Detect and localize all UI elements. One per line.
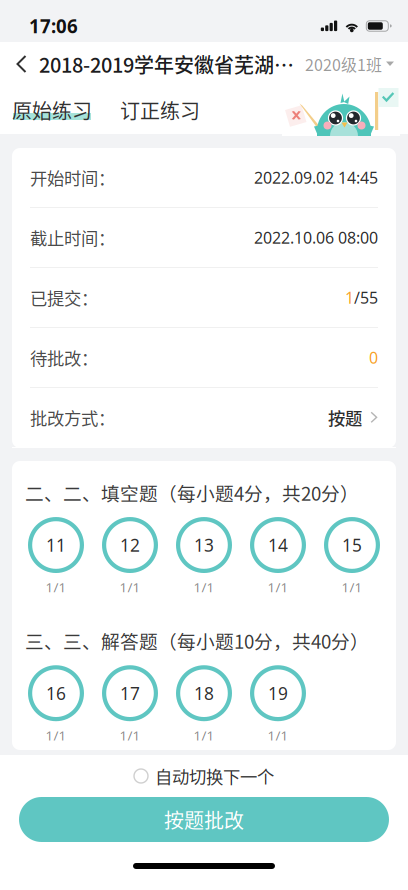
button[interactable]: 自动切换下一个 (134, 761, 274, 791)
button[interactable]: 按题批改 (19, 797, 389, 842)
staticText: 已提交： (30, 285, 98, 310)
button[interactable]: 11 (28, 517, 84, 596)
staticText: 开始时间： (30, 165, 115, 190)
staticText: /55 (354, 287, 378, 308)
button[interactable]: 16 (28, 665, 84, 744)
button[interactable]: 17 (102, 665, 158, 744)
button[interactable]: 13 (176, 517, 232, 596)
staticText: 2020级1班 (305, 52, 382, 76)
staticText: 1/1 (119, 726, 140, 744)
staticText: 19 (268, 681, 288, 705)
staticText: 13 (194, 533, 214, 557)
staticText: 1/1 (193, 726, 214, 744)
staticText: 2022.10.06 08:00 (254, 227, 378, 248)
staticText: 1/1 (45, 578, 66, 596)
button[interactable]: 批改方式： (12, 388, 396, 448)
button[interactable]: Back (6, 42, 37, 86)
staticText: 1/1 (267, 578, 288, 596)
button[interactable]: 19 (250, 665, 306, 744)
staticText: 批改方式： (30, 405, 115, 430)
staticText: 1/1 (341, 578, 362, 596)
staticText: 订正练习 (120, 95, 200, 124)
button[interactable]: 14 (250, 517, 306, 596)
staticText: 按题批改 (164, 805, 244, 834)
staticText: 2018-2019学年安徽省芜湖… (39, 49, 294, 78)
staticText: 1/1 (193, 578, 214, 596)
staticText: 15 (342, 533, 362, 557)
button[interactable]: 原始练习 (10, 96, 94, 123)
staticText: 1/1 (267, 726, 288, 744)
staticText: 1/1 (119, 578, 140, 596)
staticText: 14 (268, 533, 288, 557)
button[interactable]: 12 (102, 517, 158, 596)
staticText: 自动切换下一个 (155, 763, 274, 789)
staticText: 0 (369, 347, 378, 368)
button[interactable]: 18 (176, 665, 232, 744)
button[interactable]: 已提交： (12, 268, 396, 328)
staticText: 16 (46, 681, 66, 705)
button[interactable]: 待批改： (12, 328, 396, 388)
staticText: 17 (120, 681, 140, 705)
staticText: 按题 (328, 405, 362, 430)
staticText: 1/1 (45, 726, 66, 744)
staticText: 11 (46, 533, 66, 557)
staticText: 12 (120, 533, 140, 557)
staticText: 二、二、填空题（每小题4分，共20分） (25, 479, 359, 506)
staticText: 待批改： (30, 345, 98, 370)
button[interactable]: 截止时间： (12, 208, 396, 268)
staticText: 2022.09.02 14:45 (254, 167, 378, 188)
staticText: 17:06 (29, 13, 78, 39)
button[interactable]: 开始时间： (12, 148, 396, 208)
staticText: 18 (194, 681, 214, 705)
button[interactable]: 订正练习 (118, 96, 202, 123)
staticText: 截止时间： (30, 225, 115, 250)
button[interactable]: 15 (324, 517, 380, 596)
staticText: 原始练习 (12, 95, 92, 124)
button[interactable]: 2020级1班 (305, 42, 394, 86)
staticText: 1 (345, 287, 354, 308)
staticText: 三、三、解答题（每小题10分，共40分） (25, 627, 369, 654)
